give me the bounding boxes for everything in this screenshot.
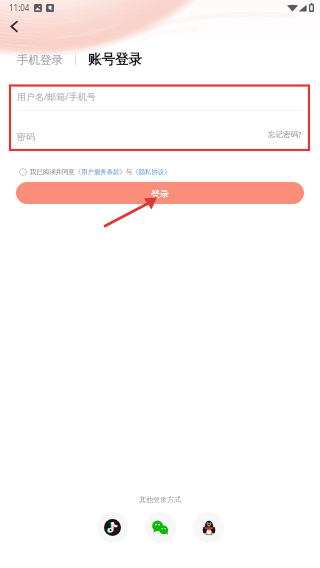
button[interactable]: 密码 [17,127,217,145]
staticText: 用户名/邮箱/手机号 [17,90,96,102]
button[interactable]: 手机登录 [17,50,63,70]
button[interactable]: WeChat login [145,512,176,543]
staticText: 11:04 [9,2,30,13]
button[interactable]: QQ login [193,512,224,543]
staticText: 账号登录 [88,51,142,68]
staticText: 登录 [151,188,169,199]
staticText: 忘记密码? [268,129,302,139]
button[interactable]: Douyin login [97,512,128,543]
staticText: 密码 [17,131,35,142]
button[interactable]: 用户名/邮箱/手机号 [17,86,303,106]
button[interactable]: 登录 [16,182,304,204]
staticText: 手机登录 [17,53,63,67]
button[interactable]: Agree to terms [16,165,30,179]
staticText: 我已阅读并同意《用户服务条款》与《隐私协议》 [30,168,171,176]
button[interactable]: Back [2,14,26,38]
staticText: 其他登录方式 [139,495,181,504]
button[interactable]: 忘记密码? [266,125,304,143]
button[interactable]: 账号登录 [88,48,142,71]
